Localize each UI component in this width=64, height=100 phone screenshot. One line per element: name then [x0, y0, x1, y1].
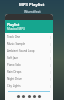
staticText: Track One: [7, 35, 49, 39]
staticText: Playlist: [7, 22, 20, 27]
staticText: ⋮: [49, 77, 52, 80]
staticText: Wurstfest: [24, 9, 41, 14]
staticText: Music Sample: [7, 42, 49, 46]
staticText: Musical MP3: [7, 27, 25, 31]
staticText: ⋮: [49, 63, 52, 66]
staticText: ⋮: [49, 70, 52, 73]
button[interactable]: control: [22, 95, 25, 98]
staticText: ⋮: [49, 49, 52, 52]
button[interactable]: Track One: [5, 33, 53, 40]
button[interactable]: control: [38, 95, 41, 98]
staticText: Night Drive: [7, 77, 49, 81]
staticText: ⋮: [49, 56, 52, 59]
staticText: ⋮: [49, 84, 52, 87]
button[interactable]: Rain Drops: [5, 68, 53, 75]
button[interactable]: control: [28, 95, 31, 98]
staticText: Ambient Sound Loop: [7, 49, 49, 53]
staticText: ⋮: [49, 42, 52, 45]
button[interactable]: Night Drive: [5, 75, 53, 82]
staticText: Soft Jazz: [7, 56, 49, 60]
button[interactable]: control: [17, 95, 20, 98]
button[interactable]: Piano Solo: [5, 61, 53, 68]
button[interactable]: control: [33, 95, 36, 98]
staticText: ⋮: [49, 35, 52, 38]
staticText: MP3 Playlist: [19, 2, 45, 8]
button[interactable]: City Lights: [5, 82, 53, 89]
staticText: Rain Drops: [7, 70, 49, 74]
staticText: Piano Solo: [7, 63, 49, 67]
button[interactable]: Soft Jazz: [5, 54, 53, 61]
button[interactable]: Ambient Sound Loop: [5, 47, 53, 54]
button[interactable]: Music Sample: [5, 40, 53, 47]
staticText: City Lights: [7, 84, 49, 88]
